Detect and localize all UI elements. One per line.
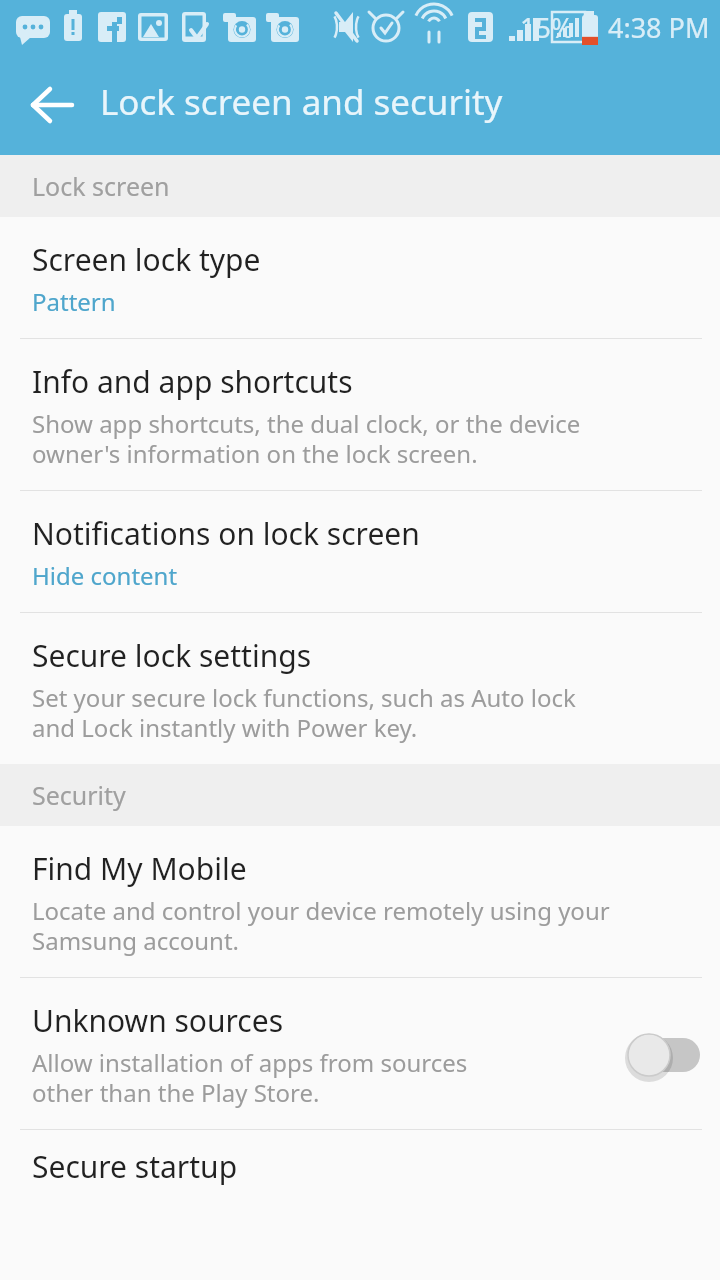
staticText: Locate and control your device remotely … bbox=[32, 894, 610, 957]
staticText: Secure lock settings bbox=[32, 635, 311, 676]
button[interactable]: Notifications on lock screen bbox=[0, 491, 720, 613]
staticText: Security bbox=[32, 778, 126, 812]
button[interactable]: Find My Mobile bbox=[0, 826, 720, 978]
staticText: 4:38 PM bbox=[608, 9, 710, 46]
staticText: Lock screen and security bbox=[100, 78, 503, 126]
button[interactable]: Unknown sources bbox=[0, 978, 720, 1130]
staticText: Info and app shortcuts bbox=[32, 361, 353, 402]
staticText: Set your secure lock functions, such as … bbox=[32, 681, 576, 744]
staticText: Allow installation of apps from sources … bbox=[32, 1046, 468, 1109]
staticText: Hide content bbox=[32, 559, 178, 592]
staticText: Lock screen bbox=[32, 169, 170, 203]
button[interactable]: Secure startup bbox=[0, 1130, 720, 1280]
button[interactable]: Unknown sources toggle bbox=[624, 1030, 702, 1080]
button[interactable]: Secure lock settings bbox=[0, 613, 720, 764]
staticText: Screen lock type bbox=[32, 239, 261, 280]
button[interactable]: Back bbox=[26, 78, 80, 132]
staticText: Notifications on lock screen bbox=[32, 513, 420, 554]
staticText: Unknown sources bbox=[32, 1000, 284, 1041]
staticText: 15% bbox=[520, 9, 574, 46]
staticText: Show app shortcuts, the dual clock, or t… bbox=[32, 407, 581, 470]
staticText: Pattern bbox=[32, 285, 116, 318]
staticText: Secure startup bbox=[32, 1146, 238, 1187]
button[interactable]: Info and app shortcuts bbox=[0, 339, 720, 491]
staticText: Find My Mobile bbox=[32, 848, 247, 889]
button[interactable]: Screen lock type bbox=[0, 217, 720, 339]
